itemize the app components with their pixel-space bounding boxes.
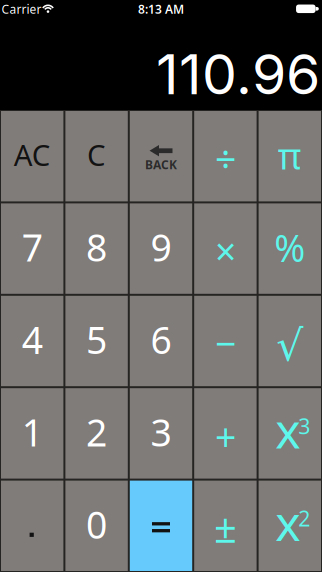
staticText: 9 — [150, 222, 171, 272]
staticText: π — [278, 132, 302, 179]
button[interactable]: 4 — [1, 296, 63, 386]
staticText: √ — [276, 322, 303, 370]
button[interactable]: 8 — [65, 203, 128, 294]
staticText: + — [215, 412, 236, 461]
staticText: Carrier — [1, 1, 41, 17]
button[interactable]: √ — [259, 296, 321, 386]
button[interactable]: 1 — [1, 388, 63, 479]
button[interactable]: 5 — [65, 296, 128, 386]
staticText: 2 — [298, 504, 310, 532]
button[interactable]: AC — [1, 111, 63, 201]
button[interactable]: 9 — [130, 203, 192, 294]
staticText: 5 — [86, 315, 107, 364]
staticText: 2 — [86, 407, 107, 457]
staticText: 3 — [150, 407, 171, 457]
button[interactable]: ± — [194, 481, 257, 571]
staticText: 1 — [22, 407, 43, 457]
staticText: 110.96 — [156, 40, 320, 107]
button[interactable]: x3 — [259, 388, 321, 479]
button[interactable]: π — [259, 111, 321, 201]
button[interactable]: 0 — [65, 481, 128, 571]
staticText: x — [275, 490, 300, 554]
button[interactable]: 3 — [130, 388, 192, 479]
staticText: 8:13 AM — [138, 1, 184, 17]
staticText: x — [275, 398, 300, 462]
button[interactable]: Backspace — [130, 111, 192, 201]
staticText: C — [87, 135, 106, 174]
button[interactable]: − — [194, 296, 257, 386]
staticText: 0 — [86, 499, 107, 549]
staticText: × — [215, 226, 236, 276]
staticText: 7 — [22, 222, 43, 272]
button[interactable]: 2 — [65, 388, 128, 479]
button[interactable]: % — [259, 203, 321, 294]
staticText: 4 — [22, 315, 43, 364]
staticText: AC — [14, 135, 51, 174]
button[interactable]: × — [194, 203, 257, 294]
staticText: BACK — [145, 157, 177, 173]
button[interactable]: 6 — [130, 296, 192, 386]
staticText: % — [274, 223, 305, 272]
staticText: ± — [214, 501, 237, 554]
button[interactable]: x2 — [259, 481, 321, 571]
button[interactable]: . — [1, 481, 63, 571]
button[interactable]: ÷ — [194, 111, 257, 201]
staticText: ÷ — [215, 134, 236, 183]
staticText: 8 — [86, 222, 107, 272]
staticText: 3 — [298, 412, 310, 440]
button[interactable]: = — [130, 481, 192, 571]
button[interactable]: C — [65, 111, 128, 201]
staticText: − — [215, 318, 236, 368]
button[interactable]: + — [194, 388, 257, 479]
staticText: 6 — [150, 315, 171, 364]
button[interactable]: 7 — [1, 203, 63, 294]
